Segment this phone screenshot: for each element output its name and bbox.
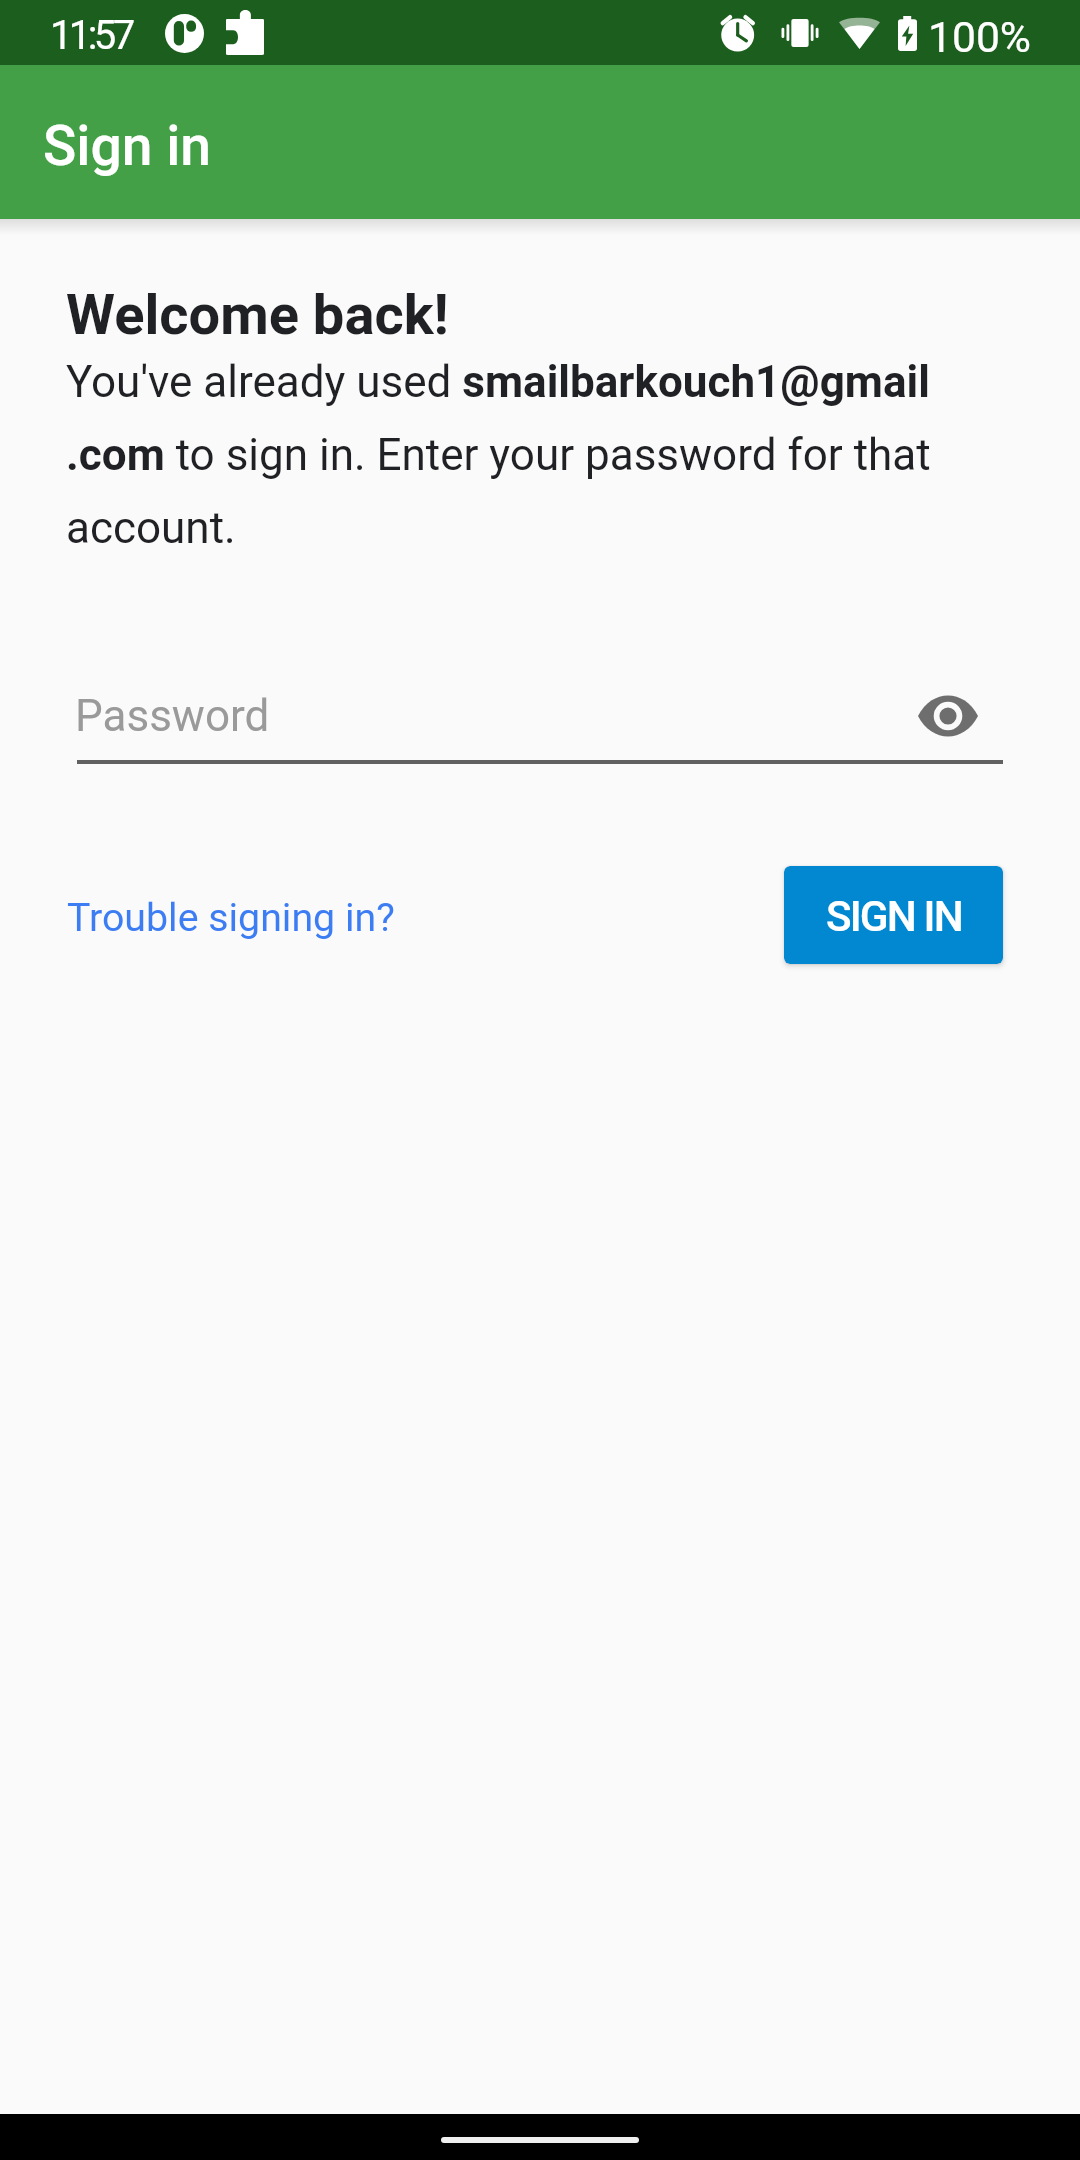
staticText: You've already used smailbarkouch1@gmail…: [66, 340, 931, 559]
button[interactable]: Home: [441, 2137, 639, 2143]
staticText: Password: [75, 672, 270, 746]
button[interactable]: Trouble signing in?: [67, 888, 395, 942]
staticText: Sign in: [43, 114, 211, 179]
staticText: 11:57: [50, 12, 132, 59]
staticText: Welcome back!: [66, 278, 449, 349]
button[interactable]: Show password: [909, 686, 987, 746]
button[interactable]: SIGN IN: [784, 866, 1003, 964]
staticText: 100%: [928, 12, 1032, 62]
staticText: SIGN IN: [826, 892, 962, 942]
staticText: Trouble signing in?: [67, 888, 395, 942]
